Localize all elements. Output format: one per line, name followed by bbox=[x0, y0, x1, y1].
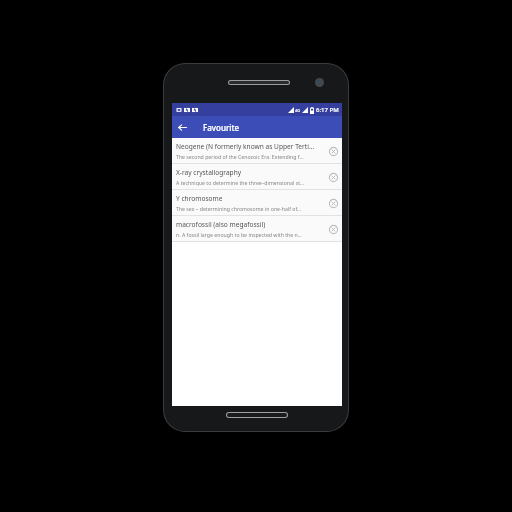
button[interactable]: Remove from favourites bbox=[324, 168, 342, 186]
staticText: The sex – determining chromosome in one-… bbox=[176, 205, 302, 212]
staticText: n. A fossil large enough to be inspected… bbox=[176, 231, 302, 238]
button[interactable]: Remove from favourites bbox=[324, 220, 342, 238]
staticText: Neogene (N formerly known as Upper Terti… bbox=[176, 142, 315, 151]
button[interactable]: X-ray crystallography bbox=[172, 164, 342, 189]
button[interactable]: Back bbox=[172, 117, 192, 137]
button[interactable]: Remove from favourites bbox=[324, 142, 342, 160]
staticText: X-ray crystallography bbox=[176, 168, 242, 177]
staticText: A technique to determine the three–dimen… bbox=[176, 179, 305, 186]
button[interactable]: Neogene (N formerly known as Upper Terti… bbox=[172, 138, 342, 163]
button[interactable]: Y chromosome bbox=[172, 190, 342, 215]
staticText: Favourite bbox=[203, 122, 240, 133]
staticText: 4G bbox=[295, 108, 301, 113]
button[interactable]: macrofossil (also megafossil) bbox=[172, 216, 342, 241]
staticText: Y chromosome bbox=[176, 194, 223, 203]
button[interactable]: Remove from favourites bbox=[324, 194, 342, 212]
staticText: The second period of the Cenozoic Era. E… bbox=[176, 153, 304, 160]
staticText: 6:17 PM bbox=[316, 106, 339, 114]
staticText: macrofossil (also megafossil) bbox=[176, 220, 266, 229]
